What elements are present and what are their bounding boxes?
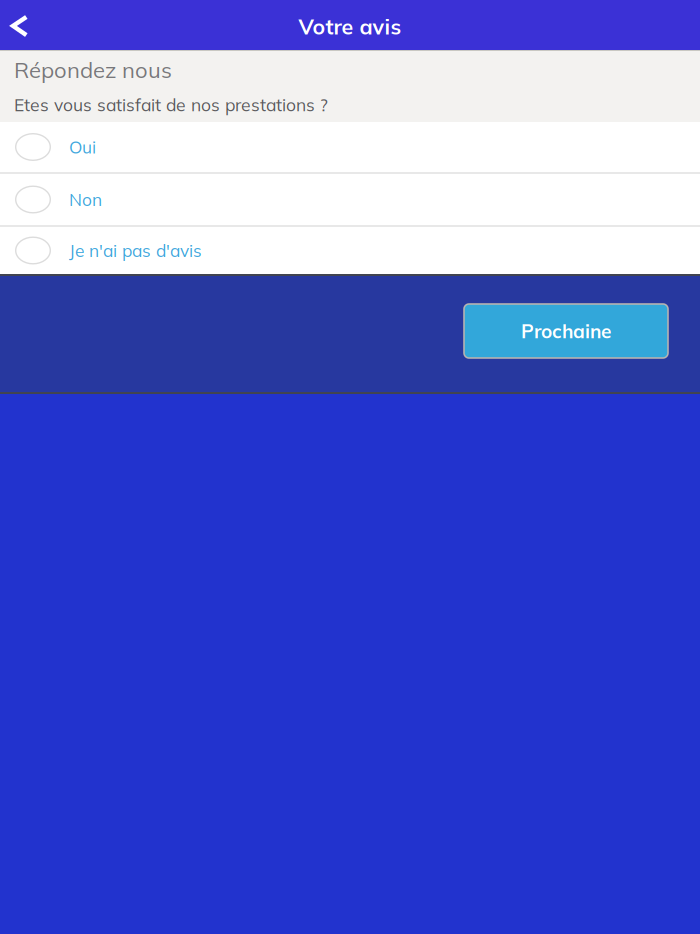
staticText: Non [69, 189, 102, 210]
staticText: Etes vous satisfait de nos prestations ? [14, 94, 328, 115]
button[interactable]: Prochaine [464, 304, 668, 358]
staticText: Prochaine [521, 319, 611, 343]
staticText: Je n'ai pas d'avis [69, 240, 202, 261]
button[interactable]: Back [0, 0, 40, 50]
button[interactable]: Je n'ai pas d'avis [0, 227, 700, 274]
staticText: Oui [69, 136, 96, 158]
button[interactable]: Oui [0, 122, 700, 172]
staticText: Répondez nous [14, 56, 172, 84]
button[interactable]: Non [0, 174, 700, 225]
staticText: Votre avis [298, 13, 401, 40]
